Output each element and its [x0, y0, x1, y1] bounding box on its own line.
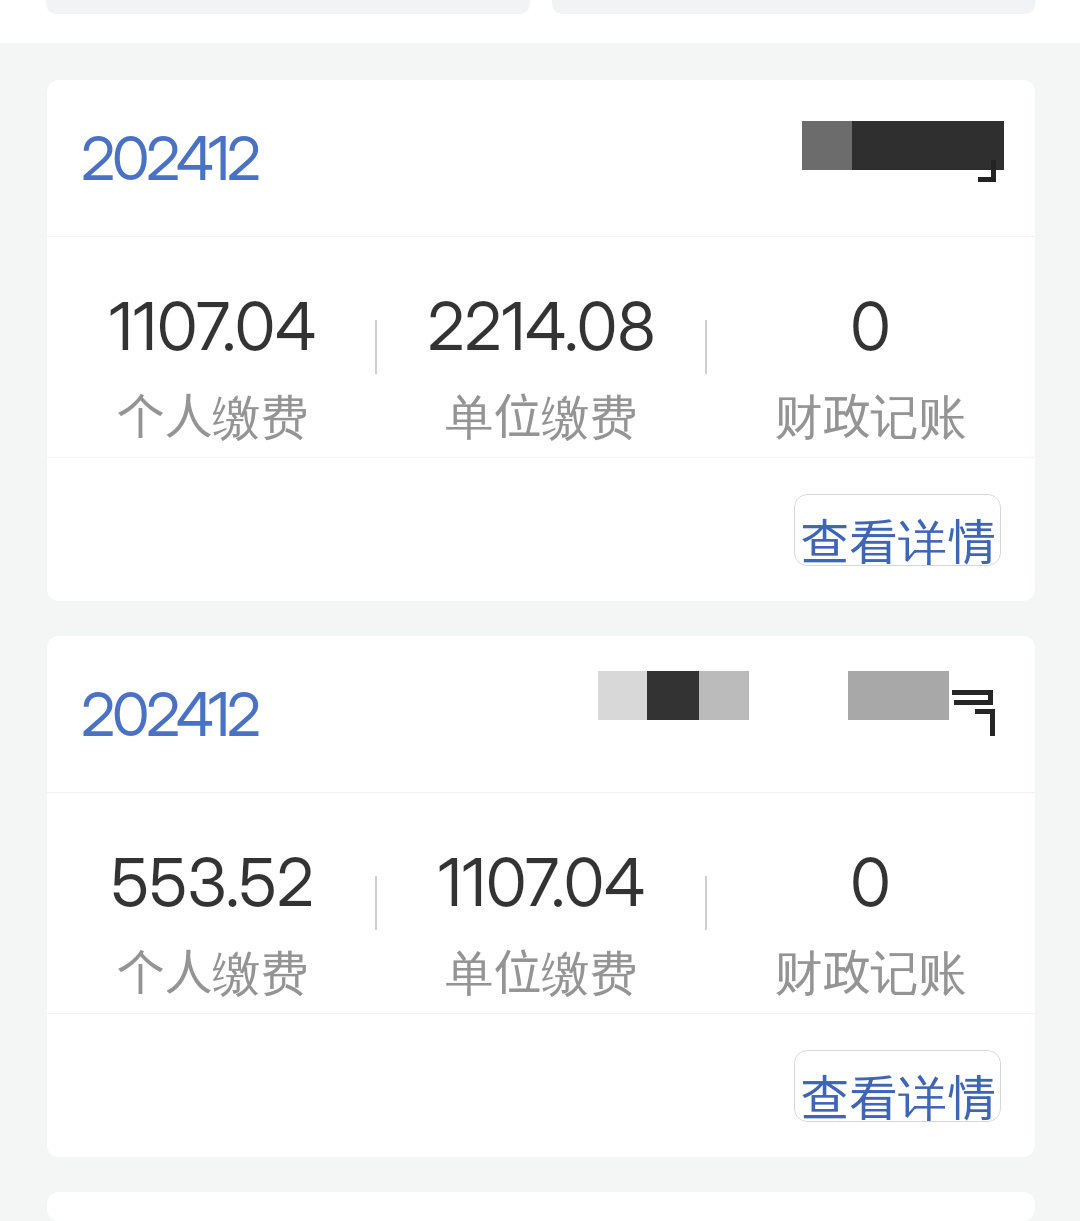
- staticText: 查看详情: [800, 503, 997, 566]
- staticText: 202412: [81, 121, 258, 195]
- staticText: 财政记账: [774, 934, 967, 1004]
- staticText: 单位缴费: [445, 378, 638, 448]
- button[interactable]: 查看详情: [794, 1050, 1001, 1122]
- staticText: 单位缴费: [445, 934, 638, 1004]
- staticText: 553.52: [111, 842, 314, 922]
- staticText: 1107.04: [438, 842, 645, 922]
- staticText: 0: [850, 286, 891, 366]
- button[interactable]: 查看详情: [794, 494, 1001, 566]
- button[interactable]: 202412: [47, 80, 1035, 601]
- staticText: 个人缴费: [116, 378, 309, 448]
- staticText: 财政记账: [774, 378, 967, 448]
- staticText: 202412: [81, 677, 258, 751]
- staticText: 1107.04: [109, 286, 316, 366]
- staticText: 0: [850, 842, 891, 922]
- staticText: 查看详情: [800, 1059, 997, 1122]
- staticText: 个人缴费: [116, 934, 309, 1004]
- other: Employer name: [802, 121, 1004, 170]
- staticText: 2214.08: [427, 286, 656, 366]
- other: Employer name: [598, 671, 994, 720]
- button[interactable]: 202412: [47, 636, 1035, 1157]
